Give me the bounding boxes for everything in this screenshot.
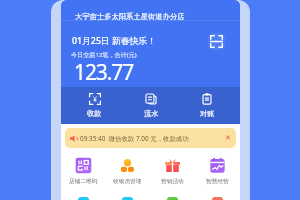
staticText: 智慧经营 bbox=[206, 178, 229, 185]
button[interactable]: 智慧经营 bbox=[195, 157, 240, 185]
button[interactable]: 收款 bbox=[66, 93, 123, 118]
staticText: 01月25日 新春快乐！ bbox=[72, 35, 156, 47]
staticText: 流水 bbox=[144, 109, 159, 118]
button[interactable]: 对账 bbox=[179, 93, 235, 118]
button[interactable]: 扫一扫 bbox=[208, 33, 225, 50]
staticText: 收银员管理 bbox=[113, 178, 142, 185]
staticText: 店铺二维码 bbox=[69, 178, 98, 185]
button[interactable]: 营销活动 bbox=[150, 157, 195, 185]
button[interactable]: 订单 bbox=[105, 192, 150, 200]
button[interactable]: 我的 bbox=[195, 192, 240, 200]
staticText: 今日交易12笔，合计(元) bbox=[71, 50, 137, 58]
staticText: 大宇宙士多太阳系土星街道办分店 bbox=[75, 12, 185, 21]
button[interactable]: 营销 bbox=[150, 192, 195, 200]
staticText: 营销活动 bbox=[161, 178, 184, 185]
button[interactable]: 流水 bbox=[123, 93, 179, 118]
staticText: 对账 bbox=[200, 109, 215, 118]
staticText: 123.77 bbox=[74, 58, 134, 87]
button[interactable]: 首页 bbox=[61, 192, 105, 200]
button[interactable]: 店铺二维码 bbox=[61, 157, 105, 185]
staticText: 收款 bbox=[87, 109, 102, 118]
button[interactable]: 09:35:40 微信收款 7.00 元，收款成功 bbox=[65, 128, 236, 148]
button[interactable]: 收银员管理 bbox=[105, 157, 150, 185]
staticText: ✕ bbox=[225, 134, 231, 142]
staticText: 09:35:40 微信收款 7.00 元，收款成功 bbox=[80, 134, 189, 143]
